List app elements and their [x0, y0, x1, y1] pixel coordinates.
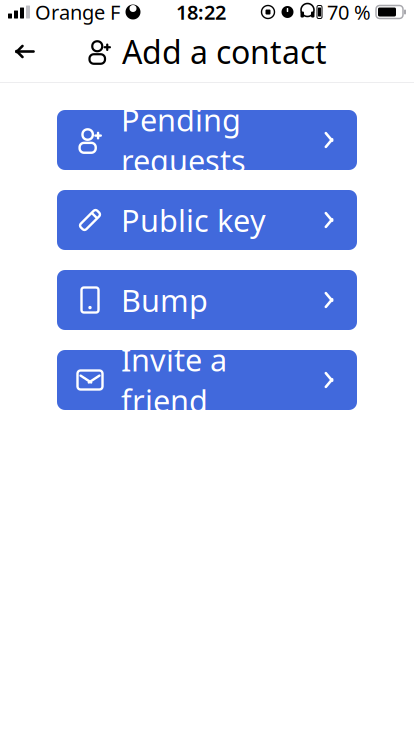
- staticText: 18:22: [176, 0, 226, 25]
- staticText: Bump: [121, 280, 208, 320]
- staticText: Add a contact: [122, 30, 327, 73]
- button[interactable]: Invite a friend: [57, 350, 357, 410]
- button[interactable]: Bump: [57, 270, 357, 330]
- button[interactable]: Back: [0, 29, 50, 73]
- staticText: Pending requests: [121, 99, 246, 181]
- button[interactable]: Public key: [57, 190, 357, 250]
- staticText: Invite a friend: [121, 339, 227, 421]
- button[interactable]: Pending requests: [57, 110, 357, 170]
- staticText: 70 %: [327, 0, 371, 25]
- staticText: Orange F: [35, 0, 120, 25]
- staticText: Public key: [121, 200, 266, 240]
